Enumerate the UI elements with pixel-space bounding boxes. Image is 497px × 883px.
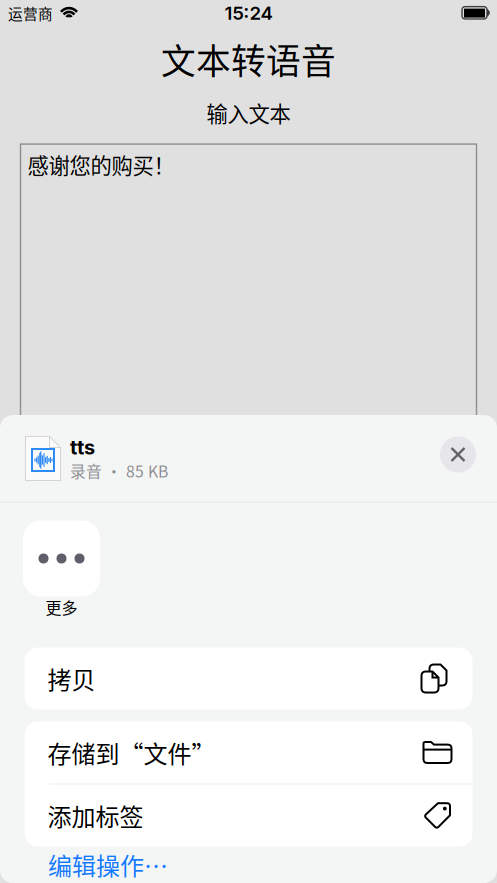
staticText: 输入文本 — [206, 97, 290, 128]
staticText: 15:24 — [224, 2, 272, 24]
staticText: 运营商 — [8, 2, 53, 24]
staticText: tts — [70, 435, 95, 459]
staticText: 存储到“文件” — [47, 735, 215, 770]
staticText: 文本转语音 — [161, 34, 336, 84]
staticText: 拷贝 — [47, 661, 95, 696]
staticText: 更多 — [45, 595, 77, 619]
button[interactable]: 拷贝 — [24, 647, 472, 709]
button[interactable]: 存储到文件 — [24, 721, 472, 783]
button[interactable]: 关闭 — [436, 432, 480, 476]
button[interactable]: 添加标签 — [24, 784, 472, 846]
staticText: 录音 · 85 KB — [70, 459, 168, 482]
staticText: 感谢您的购买！ — [27, 149, 174, 180]
button[interactable]: 更多 — [23, 520, 100, 617]
staticText: 添加标签 — [47, 798, 143, 833]
staticText: 编辑操作… — [48, 847, 168, 882]
button[interactable]: 编辑操作… — [0, 846, 497, 882]
